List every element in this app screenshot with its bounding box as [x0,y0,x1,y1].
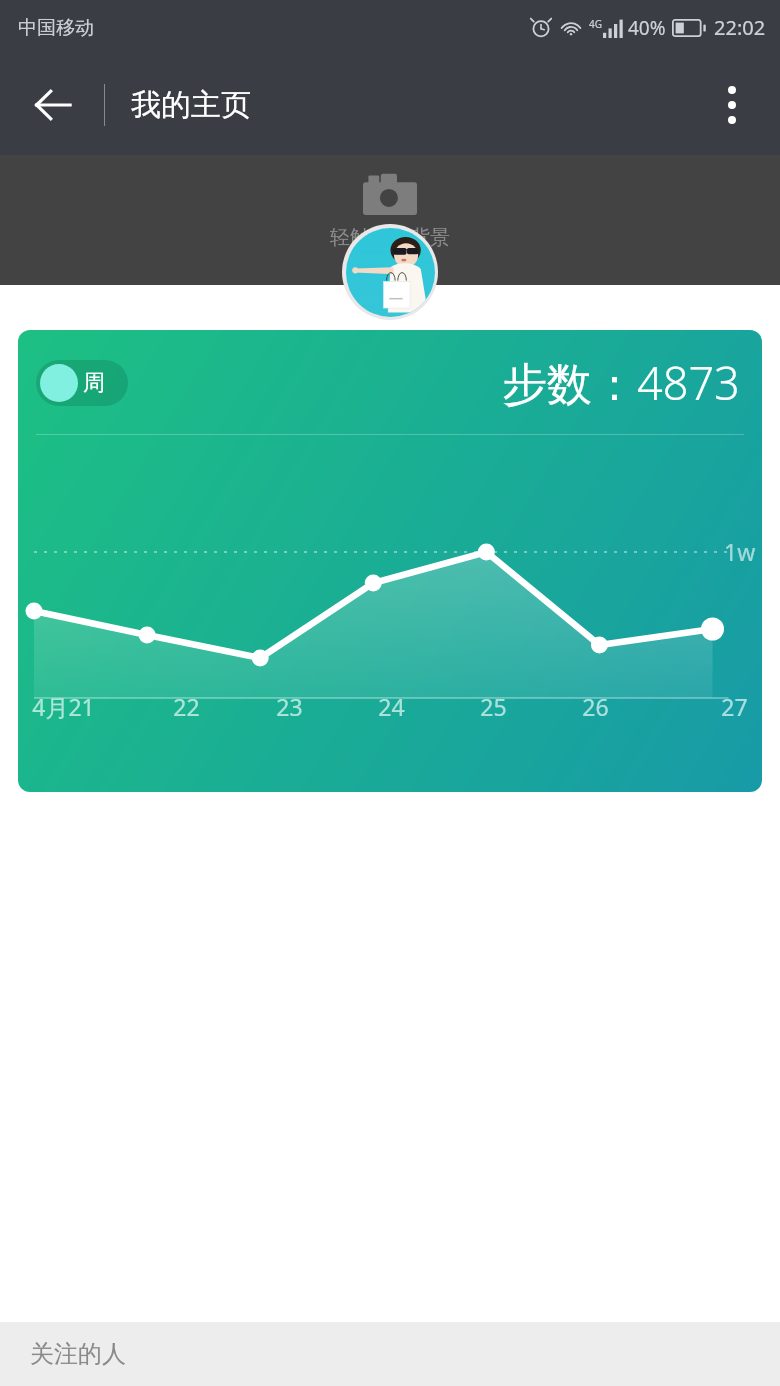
staticText: 40% [628,15,666,41]
staticText: 27 [721,691,748,722]
staticText: 关注的人 [30,1339,126,1369]
staticText: 我的主页 [131,86,251,124]
staticText: 中国移动 [18,16,94,40]
staticText: 23 [276,691,303,722]
staticText: 25 [480,691,507,722]
button[interactable]: More options [692,65,772,145]
staticText: 4G [589,17,602,31]
button[interactable]: 周 [18,330,762,792]
staticText: 22 [173,691,200,722]
staticText: 26 [582,691,609,722]
staticText: 24 [378,691,405,722]
button[interactable]: Back [12,64,94,146]
button[interactable]: 周 [36,360,128,406]
button[interactable]: Profile photo [342,224,438,320]
staticText: 轻触设置背景 [330,225,450,250]
staticText: 1w [724,536,756,567]
staticText: 步数：4873 [502,352,740,413]
button[interactable]: 关注的人 [0,1322,780,1386]
staticText: 22:02 [714,14,766,41]
staticText: 4月21 [32,691,95,722]
button[interactable]: Set background [0,155,780,285]
staticText: 周 [83,369,105,397]
